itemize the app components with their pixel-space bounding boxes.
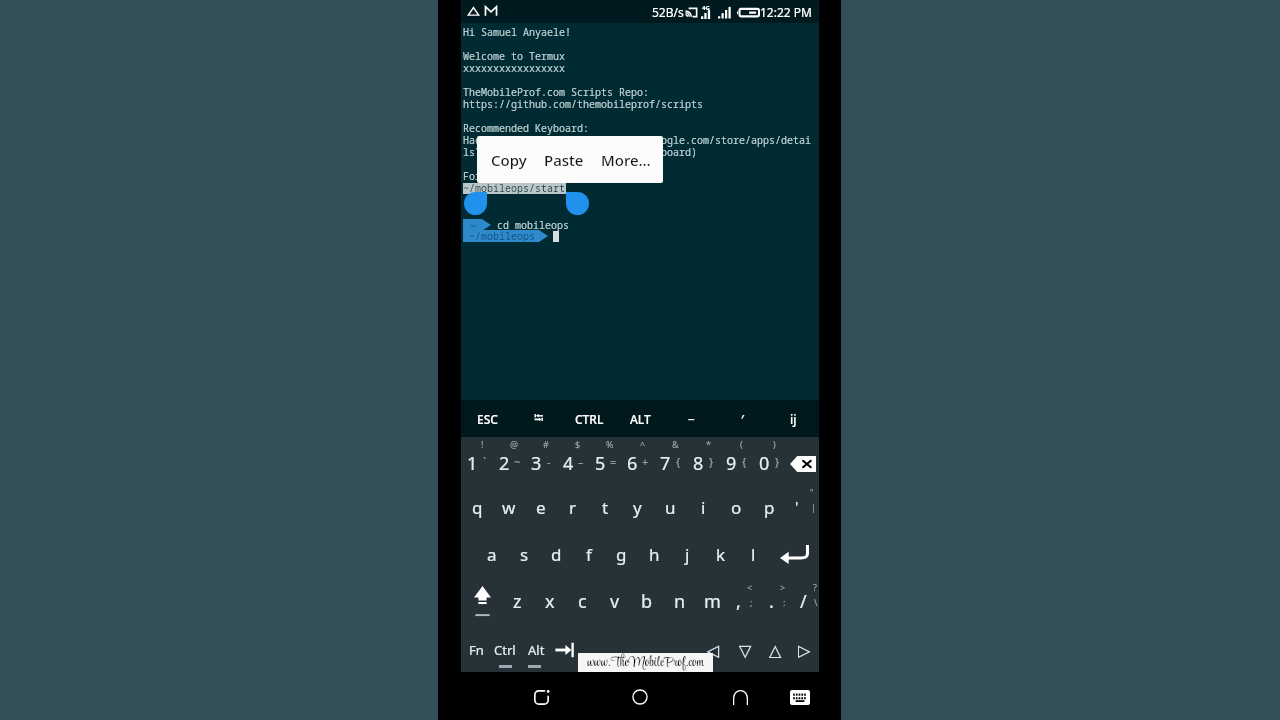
staticText: www.TheMobileProf.com [587, 652, 704, 671]
button[interactable]: z [501, 580, 533, 623]
button[interactable]: △ [759, 632, 791, 668]
button[interactable]: Backspace [786, 437, 819, 484]
staticText: ! [481, 438, 484, 450]
staticText: – [578, 454, 584, 469]
staticText: } [775, 454, 780, 469]
button[interactable]: ij [768, 400, 819, 437]
button[interactable]: Keyboard [780, 674, 820, 720]
staticText: 4G [702, 4, 710, 12]
staticText: Copy [491, 150, 527, 170]
staticText: 5 [595, 451, 606, 476]
button[interactable]: More… [595, 136, 657, 183]
button[interactable]: Alt [520, 632, 552, 668]
button[interactable]: o [720, 484, 753, 531]
button[interactable]: f [572, 531, 605, 578]
button[interactable]: ⭾ [513, 400, 564, 437]
button[interactable]: 3 [525, 437, 557, 484]
button[interactable]: s [508, 531, 540, 578]
staticText: f [586, 543, 592, 566]
button[interactable]: a [476, 531, 508, 578]
button[interactable]: 8 [687, 437, 720, 484]
staticText: 1 [467, 451, 478, 476]
button[interactable]: 5 [589, 437, 621, 484]
staticText: p [764, 496, 775, 519]
button[interactable]: m [696, 580, 728, 623]
staticText: cd mobileops [497, 218, 569, 232]
button[interactable]: 6 [621, 437, 654, 484]
staticText: c [578, 589, 587, 614]
button[interactable]: . [760, 580, 792, 623]
button[interactable]: d [540, 531, 572, 578]
staticText: ESC [477, 411, 498, 427]
button[interactable]: ▷ [788, 632, 820, 668]
button[interactable]: e [525, 484, 557, 531]
button[interactable]: Recents [513, 674, 569, 720]
button[interactable]: n [664, 580, 696, 623]
button[interactable]: x [534, 580, 566, 623]
staticText: Recommended Keyboard: [463, 121, 589, 135]
button[interactable]: 7 [654, 437, 687, 484]
staticText: b [641, 589, 653, 614]
button[interactable]: Space [583, 632, 701, 668]
button[interactable]: Ctrl [489, 632, 521, 668]
button[interactable]: 4 [557, 437, 589, 484]
button[interactable]: i [687, 484, 720, 531]
staticText: 3 [531, 451, 542, 476]
staticText: ( [740, 438, 743, 450]
staticText: For more info: run [463, 169, 571, 183]
button[interactable]: p [753, 484, 786, 531]
staticText: ⭾ [534, 409, 544, 429]
staticText: d [551, 543, 562, 566]
staticText: ~ [514, 454, 521, 469]
button[interactable]: u [654, 484, 687, 531]
button[interactable]: 1 [461, 437, 493, 484]
button[interactable]: , [727, 580, 759, 623]
button[interactable]: g [605, 531, 638, 578]
button[interactable]: − [666, 400, 717, 437]
button[interactable]: Tab [549, 632, 581, 668]
button[interactable]: t [589, 484, 621, 531]
staticText: ls?id=org.pocketworkstation.pckeyboard) [463, 145, 697, 159]
button[interactable]: CTRL [564, 400, 615, 437]
button[interactable]: h [638, 531, 671, 578]
button[interactable]: j [671, 531, 704, 578]
staticText: ~/mobileops [463, 229, 535, 241]
button[interactable]: 2 [493, 437, 525, 484]
button[interactable]: ' [786, 484, 819, 531]
button[interactable]: r [557, 484, 589, 531]
button[interactable]: / [792, 580, 824, 623]
button[interactable]: b [631, 580, 663, 623]
staticText: ) [773, 438, 776, 450]
staticText: } [709, 454, 714, 469]
staticText: w [502, 496, 516, 519]
staticText: ◁ [707, 641, 720, 660]
button[interactable]: 9 [720, 437, 753, 484]
button[interactable]: Fn [460, 632, 492, 668]
button[interactable]: y [621, 484, 654, 531]
staticText: & [672, 438, 679, 450]
button[interactable]: Home [612, 674, 668, 720]
button[interactable]: Shift [466, 580, 498, 623]
button[interactable]: q [461, 484, 493, 531]
staticText: k [716, 543, 726, 566]
button[interactable]: ′ [717, 400, 768, 437]
button[interactable]: ALT [615, 400, 666, 437]
button[interactable]: v [599, 580, 631, 623]
button[interactable]: Paste [538, 136, 590, 183]
staticText: 12:22 PM [760, 4, 812, 20]
staticText: Ctrl [494, 641, 516, 659]
button[interactable]: c [566, 580, 598, 623]
button[interactable]: k [704, 531, 737, 578]
button[interactable]: ▽ [729, 632, 761, 668]
button[interactable]: Copy [485, 136, 533, 183]
button[interactable]: ESC [461, 400, 513, 437]
staticText: ` [483, 454, 487, 469]
button[interactable]: Back [712, 674, 768, 720]
button[interactable]: l [737, 531, 770, 578]
staticText: . [769, 589, 774, 614]
button[interactable]: ◁ [697, 632, 729, 668]
button[interactable]: w [493, 484, 525, 531]
staticText: ^ [640, 438, 646, 450]
button[interactable]: 0 [753, 437, 786, 484]
button[interactable]: Enter [770, 531, 819, 578]
